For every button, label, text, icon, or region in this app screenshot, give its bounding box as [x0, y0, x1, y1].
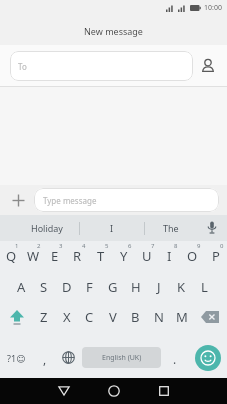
button[interactable]: [6, 188, 30, 212]
staticText: New message: [84, 25, 143, 37]
staticText: 7: [151, 242, 155, 250]
button[interactable]: [89, 378, 139, 404]
staticText: W: [27, 247, 40, 265]
staticText: I: [110, 222, 114, 234]
staticText: Type message: [43, 195, 97, 206]
staticText: U: [142, 247, 152, 265]
staticText: O: [187, 247, 198, 265]
button[interactable]: Holiday: [14, 215, 79, 241]
button[interactable]: [193, 302, 227, 332]
staticText: 8: [174, 242, 178, 250]
staticText: G: [108, 278, 118, 296]
button[interactable]: L: [193, 271, 216, 302]
button[interactable]: [188, 337, 227, 378]
button[interactable]: [56, 337, 80, 378]
staticText: Holiday: [31, 222, 63, 234]
staticText: 2: [37, 242, 41, 250]
button[interactable]: P: [204, 241, 227, 271]
staticText: 3: [59, 242, 63, 250]
staticText: D: [62, 278, 72, 296]
button[interactable]: I: [80, 215, 144, 241]
button[interactable]: K: [170, 271, 193, 302]
staticText: English (UK): [102, 353, 142, 363]
button[interactable]: I: [158, 241, 181, 271]
button[interactable]: W: [22, 241, 44, 271]
staticText: ,: [43, 351, 47, 367]
staticText: A: [17, 278, 26, 296]
staticText: B: [131, 308, 140, 326]
button[interactable]: English (UK): [82, 347, 161, 368]
button[interactable]: [39, 378, 89, 404]
button[interactable]: X: [55, 302, 78, 332]
staticText: Z: [40, 308, 48, 326]
button[interactable]: [197, 215, 227, 241]
staticText: 6: [128, 242, 132, 250]
button[interactable]: E: [44, 241, 66, 271]
button[interactable]: S: [32, 271, 55, 302]
button[interactable]: U: [135, 241, 158, 271]
button[interactable]: Type message: [34, 188, 219, 212]
staticText: N: [154, 308, 164, 326]
button[interactable]: F: [78, 271, 101, 302]
staticText: M: [176, 308, 188, 326]
button[interactable]: To: [10, 51, 193, 81]
button[interactable]: ,: [33, 337, 56, 378]
button[interactable]: [193, 45, 223, 87]
staticText: E: [51, 247, 59, 265]
staticText: T: [97, 247, 105, 265]
button[interactable]: Y: [112, 241, 135, 271]
button[interactable]: C: [78, 302, 101, 332]
staticText: L: [201, 278, 208, 296]
staticText: V: [109, 308, 117, 326]
staticText: 5: [105, 242, 109, 250]
staticText: The: [163, 222, 179, 234]
button[interactable]: ?1☺: [0, 337, 33, 378]
button[interactable]: Q: [0, 241, 22, 271]
staticText: 0: [220, 242, 224, 250]
button[interactable]: A: [10, 271, 32, 302]
staticText: K: [177, 278, 186, 296]
staticText: To: [18, 61, 27, 72]
button[interactable]: O: [181, 241, 204, 271]
button[interactable]: T: [89, 241, 112, 271]
staticText: P: [212, 247, 220, 265]
button[interactable]: J: [147, 271, 170, 302]
staticText: 1: [15, 242, 19, 250]
staticText: J: [157, 278, 161, 296]
staticText: R: [73, 247, 82, 265]
button[interactable]: [0, 302, 33, 332]
button[interactable]: .: [162, 337, 188, 378]
button[interactable]: Z: [33, 302, 55, 332]
button[interactable]: [139, 378, 189, 404]
staticText: 4: [82, 242, 86, 250]
staticText: 9: [197, 242, 201, 250]
staticText: I: [167, 247, 172, 265]
button[interactable]: M: [170, 302, 193, 332]
button[interactable]: V: [101, 302, 124, 332]
staticText: C: [85, 308, 94, 326]
staticText: S: [40, 278, 48, 296]
button[interactable]: R: [66, 241, 89, 271]
staticText: H: [131, 278, 141, 296]
staticText: .: [173, 351, 177, 367]
staticText: ?1☺: [7, 352, 26, 364]
button[interactable]: N: [147, 302, 170, 332]
staticText: Q: [6, 247, 17, 265]
staticText: X: [63, 308, 71, 326]
button[interactable]: D: [55, 271, 78, 302]
button[interactable]: G: [101, 271, 124, 302]
staticText: Y: [120, 247, 128, 265]
button[interactable]: B: [124, 302, 147, 332]
button[interactable]: The: [145, 215, 197, 241]
button[interactable]: H: [124, 271, 147, 302]
staticText: F: [86, 278, 93, 296]
staticText: 10:00: [204, 3, 222, 13]
